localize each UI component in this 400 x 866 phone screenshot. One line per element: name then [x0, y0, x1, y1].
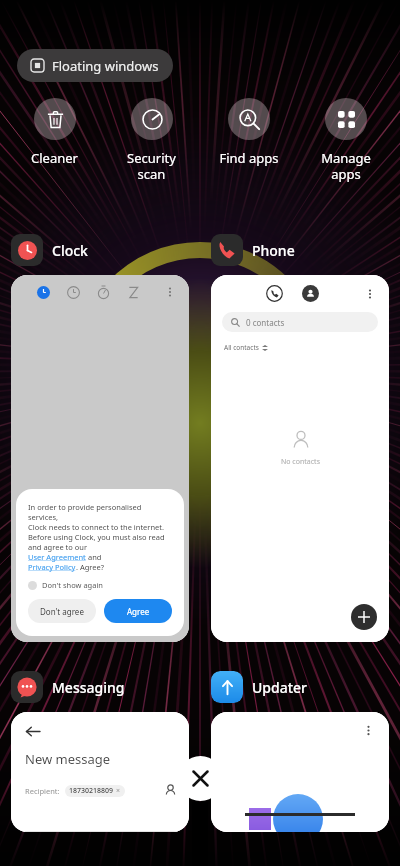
button[interactable]: More options	[211, 712, 389, 832]
staticText: In order to provide personalised service…	[28, 502, 172, 552]
button[interactable]: More options	[363, 287, 377, 301]
button[interactable]: Add contact	[351, 604, 377, 630]
staticText: Agree	[127, 606, 150, 617]
button[interactable]: Clock	[11, 234, 88, 266]
staticText: Recipient:	[25, 786, 60, 796]
button[interactable]: 0 contacts	[222, 312, 378, 332]
button[interactable]: Back	[11, 712, 189, 832]
button[interactable]: Clock	[67, 286, 80, 299]
staticText: Clock	[52, 241, 88, 260]
staticText: All contacts	[224, 343, 259, 352]
button[interactable]: Messaging	[11, 671, 125, 703]
staticText: Messaging	[52, 678, 125, 697]
button[interactable]: Dialpad	[211, 275, 389, 642]
staticText: . Agree?	[76, 562, 105, 572]
button[interactable]: Phone	[211, 234, 295, 266]
button[interactable]: Cleaner	[6, 98, 103, 167]
staticText: Updater	[252, 678, 308, 697]
button[interactable]: Alarm	[37, 286, 50, 299]
staticText: Privacy Policy	[28, 562, 76, 572]
staticText: ×	[116, 786, 121, 796]
staticText: Don't agree	[40, 606, 84, 617]
staticText: Phone	[252, 241, 295, 260]
button[interactable]: Contacts	[302, 285, 319, 302]
staticText: Manage apps	[321, 149, 371, 182]
button[interactable]: Close all recents	[178, 756, 223, 801]
button[interactable]: Stopwatch	[97, 286, 110, 299]
staticText: No contacts	[281, 457, 320, 467]
button[interactable]: Updater	[211, 671, 308, 703]
button[interactable]: Don't agree	[28, 599, 96, 623]
button[interactable]: Don't show again	[28, 580, 103, 590]
button[interactable]: Back	[25, 724, 40, 739]
button[interactable]: More options	[362, 724, 375, 737]
button[interactable]: Find apps	[200, 98, 297, 167]
button[interactable]: Agree	[104, 599, 172, 623]
button[interactable]: Security scan	[103, 98, 200, 182]
staticText: User Agreement	[28, 552, 86, 562]
staticText: 18730218809	[69, 786, 114, 796]
button[interactable]: All contacts	[224, 343, 268, 352]
button[interactable]: Timer	[127, 286, 140, 299]
staticText: Cleaner	[31, 149, 78, 167]
button[interactable]: Dialpad	[266, 285, 283, 302]
button[interactable]: Manage apps	[297, 98, 394, 182]
staticText: and	[86, 552, 102, 562]
staticText: New message	[25, 750, 111, 768]
staticText: Security scan	[127, 149, 176, 182]
staticText: Find apps	[219, 149, 279, 167]
staticText: Don't show again	[42, 580, 103, 590]
button[interactable]: Alarm	[11, 275, 189, 642]
button[interactable]: Pick contact	[164, 784, 177, 797]
button[interactable]: More options	[163, 285, 177, 299]
button[interactable]: Floating windows	[17, 49, 173, 82]
staticText: 0 contacts	[246, 317, 285, 328]
staticText: Floating windows	[52, 57, 159, 75]
